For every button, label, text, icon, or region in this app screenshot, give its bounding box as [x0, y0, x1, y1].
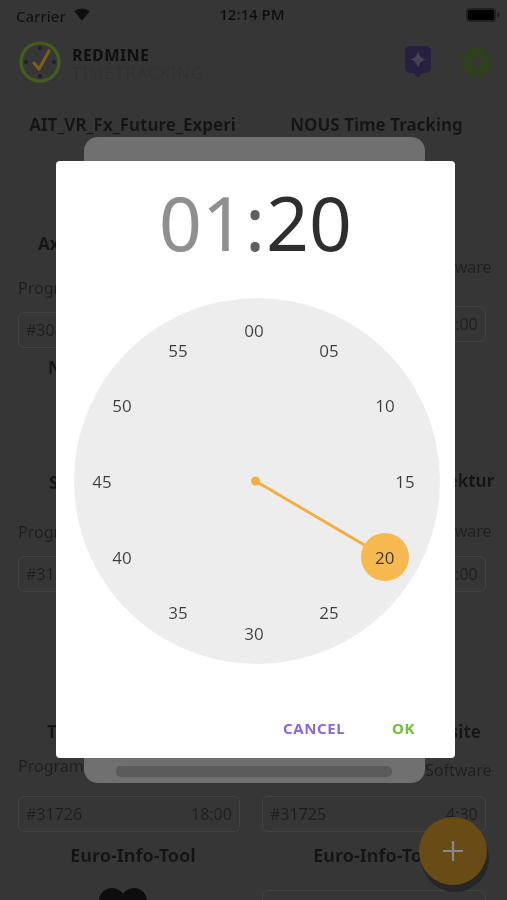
staticText: Programming: [18, 277, 123, 299]
staticText: 15: [395, 470, 415, 493]
staticText: OK: [392, 718, 416, 738]
button[interactable]: 20: [361, 533, 409, 581]
staticText: 00: [244, 319, 264, 342]
staticText: 25: [319, 601, 339, 624]
staticText: Infrastruktur-Architektur: [278, 469, 495, 492]
staticText: #31580: [26, 563, 83, 585]
staticText: 35: [168, 601, 188, 624]
staticText: Euro-Info-Tool: [70, 843, 196, 867]
button[interactable]: [403, 44, 433, 80]
button[interactable]: OK: [382, 711, 426, 745]
button[interactable]: #30491: [18, 312, 240, 348]
staticText: :: [245, 171, 266, 273]
button[interactable]: [459, 44, 495, 80]
staticText: Programming: [18, 521, 123, 543]
staticText: #31725: [270, 803, 327, 825]
staticText: 4:00: [446, 563, 478, 585]
button[interactable]: #30488: [262, 306, 486, 342]
staticText: 7:00: [446, 313, 478, 335]
button[interactable]: #31725: [262, 796, 486, 832]
staticText: 01: [159, 171, 245, 273]
button[interactable]: [262, 890, 486, 900]
staticText: 55: [168, 339, 188, 362]
button[interactable]: CANCEL: [270, 711, 358, 745]
staticText: Programming: [18, 755, 123, 777]
staticText: 18:00: [191, 803, 232, 825]
button[interactable]: [419, 817, 487, 885]
button[interactable]: #31726: [18, 796, 240, 832]
staticText: #31726: [26, 803, 83, 825]
staticText: 45: [92, 470, 112, 493]
staticText: Terminal-Software: [47, 720, 203, 743]
staticText: NOUS Wartung: [48, 356, 177, 379]
staticText: Software: [425, 759, 492, 781]
staticText: CANCEL: [283, 718, 346, 738]
staticText: AIT_VR_Fx_Future_Experi: [29, 113, 236, 136]
staticText: REDMINE: [72, 44, 150, 66]
staticText: Euro-Info-Tool: [313, 843, 439, 867]
staticText: 10: [375, 394, 395, 417]
staticText: Axum Datentechnik GmbH: [38, 232, 264, 255]
staticText: 50: [112, 394, 132, 417]
staticText: 12:14 PM: [219, 4, 285, 24]
staticText: #30491: [26, 319, 83, 341]
staticText: 20: [375, 546, 395, 569]
staticText: 05: [319, 339, 339, 362]
staticText: Support Service: [49, 471, 182, 494]
staticText: NOUS Time Tracking: [290, 113, 463, 136]
staticText: 40: [112, 546, 132, 569]
button[interactable]: #31580: [18, 556, 240, 592]
staticText: Relaunch Corporate Website: [240, 720, 481, 743]
staticText: 20: [266, 171, 352, 273]
staticText: Carrier: [16, 6, 66, 26]
staticText: Software: [425, 256, 492, 278]
staticText: 30: [244, 622, 264, 645]
button[interactable]: #31612: [262, 556, 486, 592]
staticText: Software: [425, 520, 492, 542]
staticText: 4:30: [446, 803, 478, 825]
